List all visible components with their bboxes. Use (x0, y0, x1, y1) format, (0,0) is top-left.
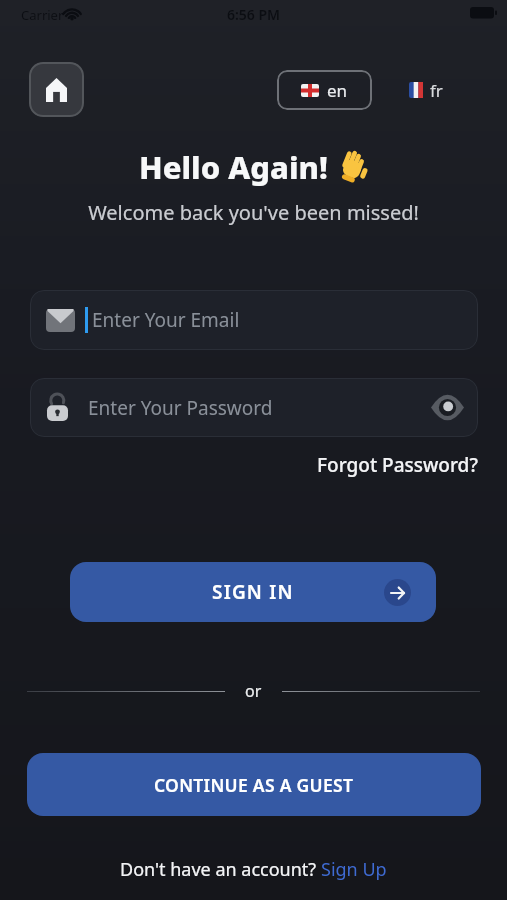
button[interactable] (431, 394, 464, 421)
button[interactable]: Sign Up (321, 857, 387, 882)
button[interactable]: SIGN IN (70, 562, 436, 622)
staticText: SIGN IN (212, 579, 294, 605)
staticText: Hello Again! (139, 146, 328, 188)
staticText: Enter Your Email (92, 307, 240, 333)
staticText: Enter Your Password (88, 395, 431, 421)
staticText: 6:56 PM (0, 5, 507, 24)
staticText: or (245, 680, 262, 702)
staticText: fr (430, 79, 443, 102)
button[interactable]: fr (409, 76, 443, 104)
button[interactable]: Forgot Password? (317, 452, 478, 478)
button[interactable]: en (277, 70, 372, 110)
staticText: en (327, 79, 348, 102)
staticText: Welcome back you've been missed! (0, 199, 507, 226)
staticText: CONTINUE AS A GUEST (154, 773, 354, 797)
button[interactable]: Enter Your Email (30, 290, 478, 350)
button[interactable] (29, 62, 84, 117)
staticText: Carrier (21, 6, 64, 24)
button[interactable]: Enter Your Password (30, 378, 478, 437)
staticText: Don't have an account? (120, 857, 321, 882)
button[interactable]: CONTINUE AS A GUEST (27, 753, 481, 816)
